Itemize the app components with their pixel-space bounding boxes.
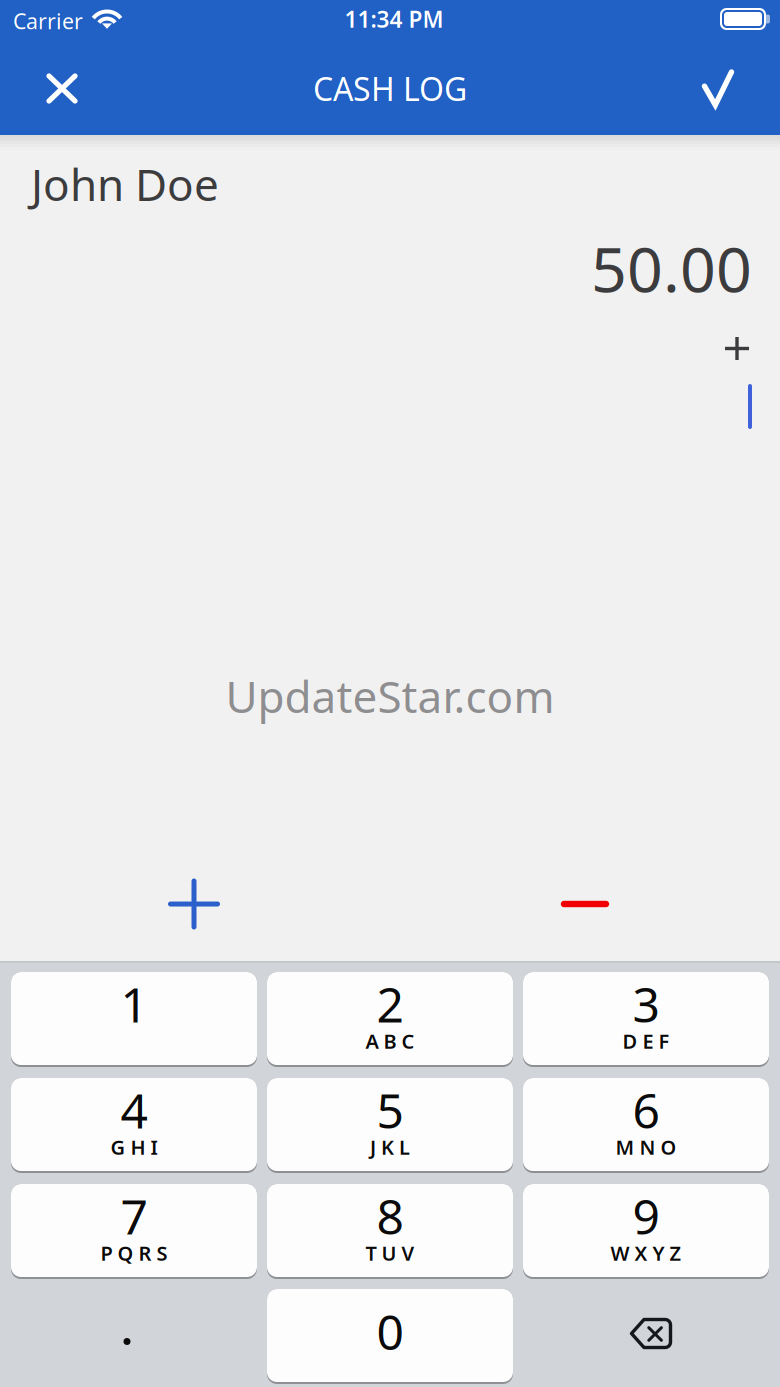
button[interactable]: Decimal point bbox=[11, 1290, 257, 1383]
staticText: 0 bbox=[376, 1300, 403, 1363]
staticText: 2 bbox=[376, 972, 403, 1036]
staticText: 50.00 bbox=[591, 226, 752, 310]
staticText: CASH LOG bbox=[313, 67, 467, 110]
button[interactable]: 2 bbox=[267, 973, 513, 1066]
staticText: 4 bbox=[120, 1078, 147, 1142]
button[interactable]: 0 bbox=[267, 1290, 513, 1383]
button[interactable]: 3 bbox=[523, 973, 769, 1066]
staticText: John Doe bbox=[31, 155, 219, 213]
staticText: WXYZ bbox=[610, 1240, 681, 1266]
staticText: GHI bbox=[110, 1134, 157, 1160]
staticText: Carrier bbox=[13, 7, 83, 35]
button[interactable]: 6 bbox=[523, 1079, 769, 1172]
button[interactable]: Save bbox=[674, 44, 762, 133]
staticText: PQRS bbox=[100, 1240, 167, 1266]
staticText: MNO bbox=[615, 1134, 676, 1160]
staticText: TUV bbox=[365, 1240, 414, 1266]
button[interactable]: Add amount bbox=[148, 858, 240, 950]
button[interactable]: 5 bbox=[267, 1079, 513, 1172]
button[interactable]: 8 bbox=[267, 1185, 513, 1278]
staticText: 8 bbox=[376, 1184, 403, 1248]
staticText: 1 bbox=[120, 972, 147, 1036]
staticText: JKL bbox=[370, 1134, 410, 1160]
staticText: DEF bbox=[622, 1028, 669, 1054]
staticText: 3 bbox=[632, 972, 659, 1036]
button[interactable]: Subtract amount bbox=[539, 858, 631, 950]
button[interactable]: Delete bbox=[523, 1290, 769, 1383]
button[interactable]: 9 bbox=[523, 1185, 769, 1278]
button[interactable]: 1 bbox=[11, 973, 257, 1066]
staticText: 7 bbox=[120, 1184, 147, 1248]
staticText: 11:34 PM bbox=[344, 4, 443, 34]
staticText: 9 bbox=[632, 1184, 659, 1248]
button[interactable]: 7 bbox=[11, 1185, 257, 1278]
button[interactable]: Close bbox=[18, 44, 106, 133]
staticText: 6 bbox=[632, 1078, 659, 1142]
staticText: 5 bbox=[376, 1078, 403, 1142]
staticText: UpdateStar.com bbox=[225, 667, 554, 725]
button[interactable]: 4 bbox=[11, 1079, 257, 1172]
staticText: ABC bbox=[365, 1028, 414, 1054]
